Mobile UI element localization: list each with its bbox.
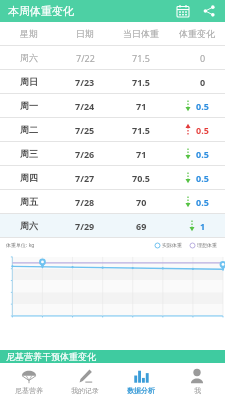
staticText: 周三	[20, 148, 38, 159]
staticText: 理想体重	[197, 242, 217, 248]
staticText: 0	[200, 76, 206, 88]
staticText: 星期	[20, 28, 38, 39]
button[interactable]: 周二	[0, 118, 225, 141]
button[interactable]: 周四	[0, 166, 225, 189]
staticText: 周五	[20, 196, 38, 207]
staticText: 7/25	[75, 124, 95, 136]
staticText: 0	[200, 52, 206, 64]
button[interactable]: 我	[169, 363, 225, 400]
staticText: 周日	[20, 76, 38, 87]
button[interactable]: 数据分析	[113, 363, 169, 400]
staticText: 0.5	[196, 172, 209, 184]
staticText: 尼基营养干预体重变化	[6, 351, 96, 362]
button[interactable]: Calendar	[173, 1, 193, 21]
staticText: 0.5	[196, 124, 209, 136]
staticText: 尼基营养	[15, 386, 43, 395]
staticText: 7/23	[75, 76, 95, 88]
button[interactable]: 周三	[0, 142, 225, 165]
button[interactable]: 周六	[0, 214, 225, 237]
staticText: 71.5	[132, 124, 150, 136]
staticText: 1	[200, 220, 206, 232]
staticText: 周一	[20, 100, 38, 111]
staticText: 70.5	[132, 172, 150, 184]
staticText: 71.5	[132, 76, 150, 88]
staticText: 0.5	[196, 196, 209, 208]
button[interactable]: 周六	[0, 46, 225, 69]
button[interactable]: 尼基营养	[0, 363, 57, 400]
staticText: 7/29	[75, 220, 95, 232]
staticText: 周二	[20, 124, 38, 135]
staticText: 71	[136, 100, 147, 112]
staticText: 体重变化	[179, 28, 215, 39]
staticText: 7/24	[75, 100, 95, 112]
staticText: 0.5	[196, 148, 209, 160]
staticText: 体重单位: kg	[6, 242, 35, 249]
staticText: 周六	[20, 52, 38, 63]
staticText: 70	[136, 196, 147, 208]
staticText: 7/22	[76, 52, 95, 64]
staticText: 7/28	[75, 196, 95, 208]
staticText: 71.5	[132, 52, 150, 64]
staticText: 周四	[20, 172, 38, 183]
staticText: 7/26	[75, 148, 95, 160]
staticText: 实际体重	[162, 242, 182, 248]
button[interactable]: Share	[199, 1, 219, 21]
staticText: 数据分析	[127, 386, 155, 395]
button[interactable]: 周五	[0, 190, 225, 213]
staticText: 本周体重变化	[8, 4, 74, 18]
staticText: 我的记录	[71, 386, 99, 395]
staticText: 69	[136, 220, 147, 232]
button[interactable]: 我的记录	[57, 363, 113, 400]
button[interactable]: 周一	[0, 94, 225, 117]
staticText: 7/27	[75, 172, 95, 184]
staticText: 我	[194, 386, 201, 395]
staticText: 71	[136, 148, 147, 160]
staticText: 日期	[76, 28, 94, 39]
staticText: 周六	[20, 220, 38, 231]
staticText: 当日体重	[123, 28, 159, 39]
button[interactable]: 周日	[0, 70, 225, 93]
staticText: 0.5	[196, 100, 209, 112]
